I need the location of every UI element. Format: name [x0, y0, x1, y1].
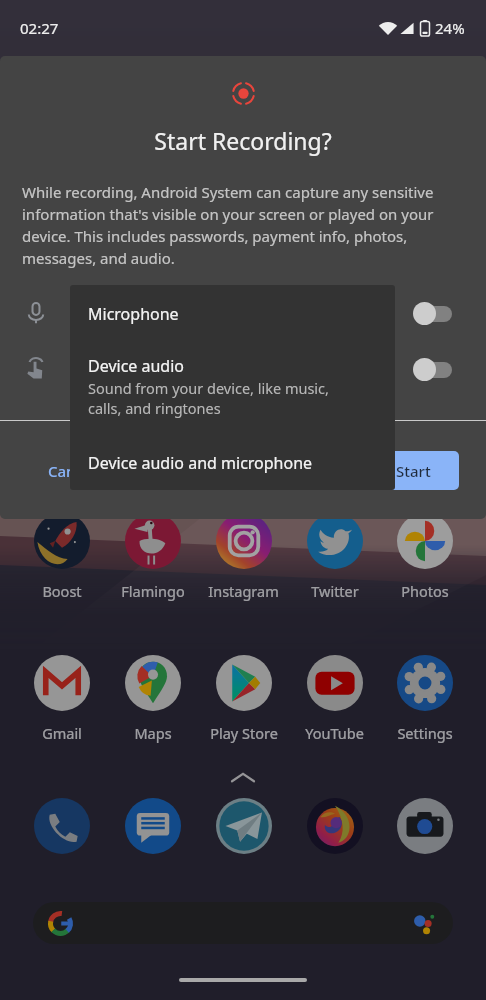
staticText: Gmail: [42, 723, 82, 743]
button[interactable]: Phone: [16, 798, 107, 854]
staticText: Cancel: [48, 461, 96, 481]
staticText: Microphone: [88, 303, 179, 325]
button[interactable]: Play Store: [198, 655, 289, 743]
button[interactable]: Device audio: [70, 343, 395, 435]
button[interactable]: Microphone: [70, 285, 395, 343]
staticText: Play Store: [210, 723, 278, 743]
button[interactable]: Cancel: [36, 451, 108, 490]
staticText: 24%: [435, 18, 465, 38]
button[interactable]: Maps: [107, 655, 198, 743]
staticText: Sound from your device, like music, call…: [88, 378, 329, 419]
button[interactable]: Twitter: [289, 513, 380, 601]
staticText: Photos: [401, 581, 449, 601]
button[interactable]: Instagram: [198, 513, 289, 601]
button[interactable]: Messages: [107, 798, 198, 854]
button[interactable]: Boost: [16, 513, 107, 601]
button[interactable]: Gmail: [16, 655, 107, 743]
button[interactable]: Start: [368, 451, 459, 490]
button[interactable]: Photos: [380, 513, 470, 601]
staticText: While recording, Android System can capt…: [22, 182, 466, 269]
button[interactable]: Device audio and microphone: [70, 435, 395, 490]
button[interactable]: YouTube: [289, 655, 380, 743]
button[interactable]: Microphone: [0, 285, 486, 341]
staticText: 02:27: [20, 18, 59, 38]
button[interactable]: Firefox: [289, 798, 380, 854]
staticText: Device audio and microphone: [88, 452, 313, 474]
staticText: Settings: [397, 723, 453, 743]
button[interactable]: Settings: [380, 655, 470, 743]
staticText: Start: [396, 461, 431, 481]
staticText: Device audio: [88, 355, 185, 377]
staticText: Boost: [42, 581, 82, 601]
staticText: Twitter: [311, 581, 359, 601]
button[interactable]: Show touches: [0, 341, 486, 397]
staticText: Instagram: [208, 581, 279, 601]
staticText: Start Recording?: [0, 125, 486, 156]
button[interactable]: Camera: [380, 798, 470, 854]
button[interactable]: Telegram: [198, 798, 289, 854]
button[interactable]: Search: [33, 902, 453, 944]
button[interactable]: Flamingo: [107, 513, 198, 601]
staticText: Maps: [134, 723, 172, 743]
staticText: Flamingo: [121, 581, 185, 601]
staticText: YouTube: [305, 723, 364, 743]
